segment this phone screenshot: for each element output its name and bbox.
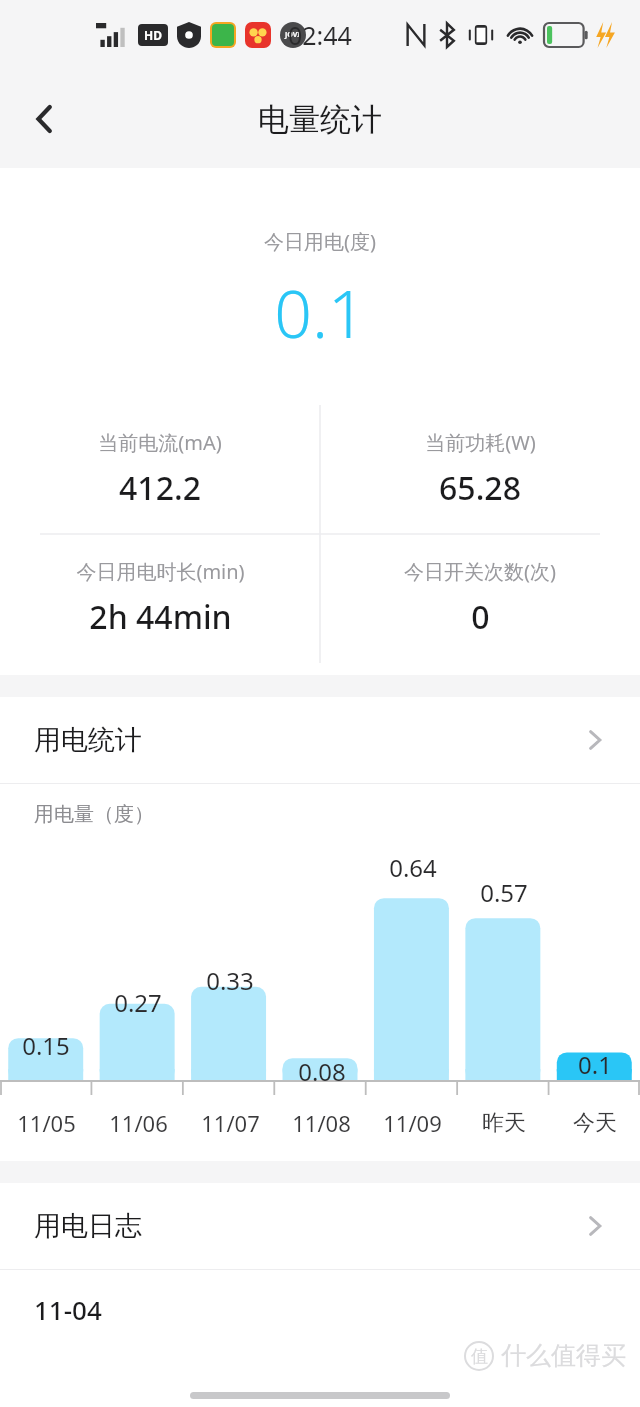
staticText: 用电量（度） [34,802,154,827]
staticText: 0.1 [578,1048,612,1081]
staticText: 什么值得买 [501,1340,626,1371]
staticText: 昨天 [482,1109,526,1137]
button[interactable]: 用电日志 [0,1183,640,1269]
staticText: 02:44 [288,18,352,52]
staticText: 用电日志 [34,1209,142,1243]
staticText: 0.1 [0,267,640,357]
staticText: 0.64 [389,851,437,884]
staticText: 当前电流(mA) [98,429,222,456]
staticText: 用电统计 [34,723,142,757]
button[interactable]: 今日用电时长(min) [0,534,320,663]
staticText: 11/09 [383,1108,442,1138]
staticText: 电量统计 [258,100,382,139]
staticText: 0.57 [480,876,528,909]
staticText: 0.33 [206,964,254,997]
staticText: 65.28 [439,466,521,510]
staticText: 11/05 [17,1108,76,1138]
staticText: 0.08 [298,1055,346,1088]
button[interactable]: 当前功耗(W) [320,405,640,534]
staticText: 当前功耗(W) [425,429,536,456]
staticText: HD [144,27,162,43]
staticText: 0.15 [22,1029,70,1062]
staticText: 412.2 [119,466,201,510]
staticText: JOVI [285,30,301,40]
staticText: 今日用电(度) [0,228,640,255]
staticText: 0 [471,595,490,639]
button[interactable]: 用电统计 [0,697,640,783]
button[interactable]: 当前电流(mA) [0,405,320,534]
staticText: 11/08 [292,1108,351,1138]
staticText: 2h 44min [89,595,232,639]
staticText: 今日用电时长(min) [76,558,245,585]
button[interactable]: 今日开关次数(次) [320,534,640,663]
staticText: 11/07 [201,1108,260,1138]
staticText: 0.27 [114,986,162,1019]
staticText: 11/06 [109,1108,168,1138]
staticText: 今日开关次数(次) [404,558,556,585]
staticText: 11-04 [34,1292,102,1327]
staticText: 今天 [573,1109,617,1137]
staticText: 值 [471,1346,488,1367]
button[interactable]: Back [14,88,76,150]
